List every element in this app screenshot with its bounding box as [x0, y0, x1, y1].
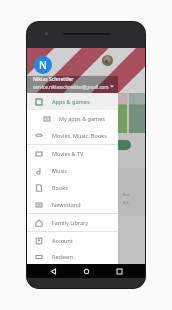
button[interactable]: Movies & TV [27, 145, 118, 162]
staticText: Redeem [52, 253, 74, 260]
staticText: My apps & games [59, 115, 105, 122]
staticText: Books [52, 184, 68, 191]
button[interactable]: Apps & games [27, 93, 118, 110]
staticText: Newsstand [52, 201, 81, 208]
staticText: 4,6 [123, 200, 129, 205]
staticText: Account [52, 237, 73, 244]
button[interactable]: Recent apps [112, 264, 126, 278]
button[interactable]: Books [27, 179, 118, 196]
staticText: N [39, 58, 47, 72]
staticText: Ser [123, 192, 130, 197]
staticText: Family Library [52, 219, 89, 226]
button[interactable]: Family Library [27, 214, 118, 231]
button[interactable]: Movies, Music, Books [27, 127, 118, 144]
button[interactable]: Back [46, 264, 60, 278]
button[interactable]: Home [79, 264, 93, 278]
staticText: Niklas Schnettler [33, 76, 74, 83]
staticText: C, BOOKS [87, 70, 110, 77]
button[interactable]: Account avatar [34, 56, 52, 74]
button[interactable]: Account [27, 232, 118, 249]
button[interactable]: Newsstand [27, 196, 118, 213]
staticText: Movies, Music, Books [52, 132, 107, 139]
button[interactable]: Music [27, 162, 118, 179]
button[interactable]: My apps & games [27, 110, 118, 127]
button[interactable]: Switch account [102, 55, 113, 66]
staticText: service.niklasschnettler@gmail.com [33, 84, 109, 90]
staticText: Music [52, 167, 68, 174]
staticText: Apps & games [52, 98, 90, 105]
staticText: Movies & TV [52, 150, 84, 157]
button[interactable]: Expand accounts [109, 83, 115, 89]
button[interactable]: Redeem [27, 249, 118, 264]
